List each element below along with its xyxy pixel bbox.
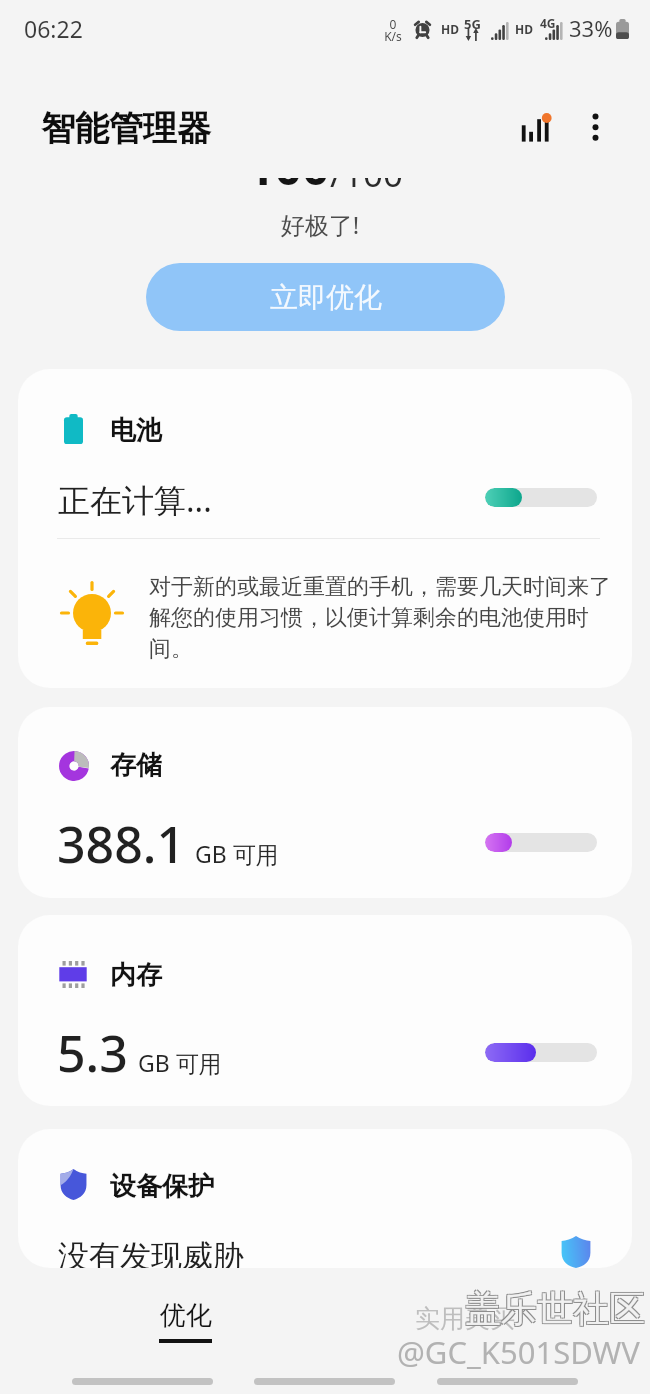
staticText: K/s — [382, 28, 404, 44]
staticText: 设备保护 — [110, 1170, 214, 1203]
staticText: 好极了! — [0, 208, 645, 241]
button[interactable]: Usage statistics — [506, 98, 564, 156]
staticText: 盖乐世社区 — [466, 1285, 646, 1330]
staticText: 盖乐世社区 — [465, 1286, 645, 1331]
staticText: GB 可用 — [138, 1047, 222, 1078]
staticText: 优化 — [160, 1299, 212, 1332]
staticText: 立即优化 — [270, 280, 382, 315]
staticText: 实用美买 — [415, 1303, 515, 1334]
staticText: 电池 — [110, 414, 162, 447]
staticText: 内存 — [110, 959, 162, 992]
staticText: 正在计算... — [58, 478, 212, 522]
button[interactable]: 存储 — [18, 707, 632, 898]
staticText: 5G — [464, 15, 481, 33]
staticText: 06:22 — [24, 13, 83, 44]
staticText: 5.3 — [57, 1019, 128, 1087]
staticText: 盖乐世社区 — [464, 1285, 644, 1330]
button[interactable]: 优化 — [130, 1277, 240, 1349]
staticText: 盖乐世社区 — [466, 1287, 646, 1332]
staticText: 智能管理器 — [41, 107, 211, 150]
staticText: HD — [441, 21, 459, 37]
staticText: 388.1 — [57, 810, 185, 878]
staticText: 33% — [569, 13, 613, 43]
staticText: GB 可用 — [195, 838, 279, 869]
staticText: HD — [515, 21, 533, 37]
staticText: 100 — [247, 134, 330, 199]
staticText: 对于新的或最近重置的手机，需要几天时间来了解您的使用习惯，以便计算剩余的电池使用… — [149, 573, 611, 663]
staticText: 0 — [382, 16, 404, 32]
button[interactable]: 内存 — [18, 915, 632, 1106]
staticText: 没有发现威胁 — [58, 1237, 244, 1268]
button[interactable]: 电池 — [18, 369, 632, 688]
staticText: 盖乐世社区 — [464, 1287, 644, 1332]
staticText: 4G — [540, 15, 556, 31]
staticText: /100 — [330, 150, 404, 198]
button[interactable]: 立即优化 — [146, 263, 505, 331]
staticText: @GC_K501SDWV — [397, 1331, 640, 1373]
button[interactable]: More options — [569, 101, 621, 153]
button[interactable]: 设备保护 — [18, 1129, 632, 1268]
staticText: 存储 — [110, 749, 162, 782]
